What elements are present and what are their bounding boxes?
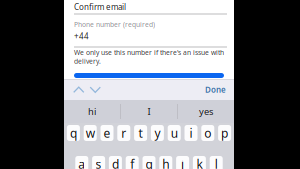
staticText: s [96,156,102,169]
button[interactable]: h [159,156,172,169]
staticText: e [103,125,110,141]
staticText: f [130,156,134,169]
button[interactable]: s [92,156,105,169]
staticText: w [86,125,95,141]
button[interactable]: I [121,100,177,123]
staticText: q [70,125,77,141]
button[interactable]: q [67,125,80,141]
button[interactable]: w [84,125,97,141]
button[interactable]: Confirm email [64,0,217,14]
staticText: h [162,156,169,169]
staticText: hi [88,105,96,118]
staticText: yes [199,105,213,118]
button[interactable]: hi [64,100,120,123]
staticText: t [139,125,143,141]
button[interactable]: Next field [87,83,105,96]
button[interactable]: Previous field [69,83,87,96]
button[interactable]: u [168,125,181,141]
button[interactable]: d [109,156,122,169]
button[interactable]: yes [178,100,234,123]
button[interactable]: Phone number (required) [64,0,217,26]
button[interactable]: f [126,156,139,169]
staticText: y [154,125,160,141]
staticText: r [121,125,126,141]
button[interactable]: r [117,125,130,141]
button[interactable]: l [210,156,223,169]
staticText: g [145,156,152,169]
button[interactable]: t [134,125,147,141]
staticText: p [221,125,228,141]
button[interactable]: k [193,156,206,169]
staticText: i [189,125,192,141]
staticText: k [196,156,202,169]
button[interactable]: a [75,156,88,169]
button[interactable]: Continue [64,71,234,79]
staticText: Phone number (required) [74,20,155,29]
button[interactable]: Done [202,81,229,98]
staticText: u [171,125,178,141]
button[interactable]: j [176,156,189,169]
staticText: Confirm email [74,2,126,12]
button[interactable]: i [184,125,197,141]
staticText: +44 [74,31,89,41]
button[interactable]: p [218,125,231,141]
staticText: Done [205,84,226,95]
staticText: l [215,156,218,169]
staticText: a [78,156,85,169]
button[interactable]: y [151,125,164,141]
staticText: j [181,156,184,169]
button[interactable]: o [201,125,214,141]
button[interactable]: e [100,125,113,141]
staticText: We only use this number if there's an is… [74,48,224,66]
button[interactable]: g [142,156,155,169]
staticText: I [147,105,150,118]
staticText: o [204,125,211,141]
staticText: d [112,156,119,169]
